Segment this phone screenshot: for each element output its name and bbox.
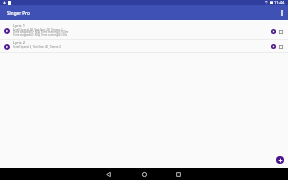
button[interactable]: Play Lyric 2 — [4, 44, 10, 50]
button[interactable]: Play Lyric 1 — [0, 20, 288, 40]
staticText: Lyric 2 — [13, 40, 26, 45]
button[interactable]: More options — [277, 8, 287, 18]
staticText: 11:44 — [274, 0, 285, 5]
button[interactable]: Present Lyric 2 — [270, 43, 277, 50]
button[interactable]: Play Lyric 1 — [4, 28, 10, 34]
button[interactable]: Play Lyric 2 — [0, 40, 288, 53]
button[interactable]: Home — [137, 168, 151, 180]
button[interactable]: Back — [101, 168, 115, 180]
staticText: Time stopped(1): N/A, Time running(1): 0… — [13, 30, 69, 34]
button[interactable]: Add lyric — [276, 156, 284, 164]
staticText: Scroll Speed: 2, Text Size: 40, Timers: … — [13, 45, 62, 49]
staticText: Lyric 1 — [13, 23, 26, 28]
button[interactable]: Present Lyric 1 — [270, 28, 277, 35]
button[interactable]: Recents — [171, 168, 185, 180]
staticText: Scroll Speed: 28, Text Size: 28, Timers:… — [13, 28, 63, 32]
button[interactable]: Select Lyric 1 — [277, 28, 284, 35]
staticText: Time stopped(2): N/A, Time running(2): 0… — [13, 33, 67, 37]
button[interactable]: Select Lyric 2 — [277, 43, 284, 50]
staticText: Singer Pro — [7, 10, 30, 16]
